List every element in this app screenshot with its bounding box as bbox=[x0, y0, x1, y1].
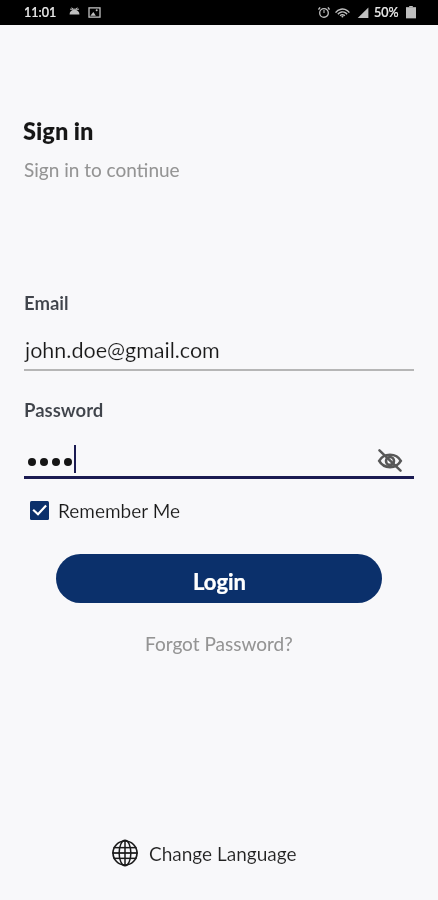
staticText: john.doe@gmail.com bbox=[25, 337, 220, 363]
button[interactable]: Remember Me bbox=[30, 499, 181, 522]
staticText: Email bbox=[24, 292, 69, 314]
staticText: Change Language bbox=[149, 842, 297, 865]
staticText: Password bbox=[24, 399, 104, 421]
staticText: Sign in to continue bbox=[24, 158, 180, 181]
staticText: Sign in bbox=[23, 117, 94, 145]
button[interactable]: Show password bbox=[376, 446, 404, 474]
staticText: Remember Me bbox=[58, 499, 181, 522]
button[interactable]: Forgot Password? bbox=[145, 632, 293, 655]
staticText: 11:01 bbox=[24, 5, 57, 20]
staticText: 50% bbox=[374, 5, 399, 20]
button[interactable]: Login bbox=[56, 554, 382, 603]
button[interactable]: Change Language bbox=[112, 840, 297, 866]
staticText: Login bbox=[193, 568, 247, 594]
